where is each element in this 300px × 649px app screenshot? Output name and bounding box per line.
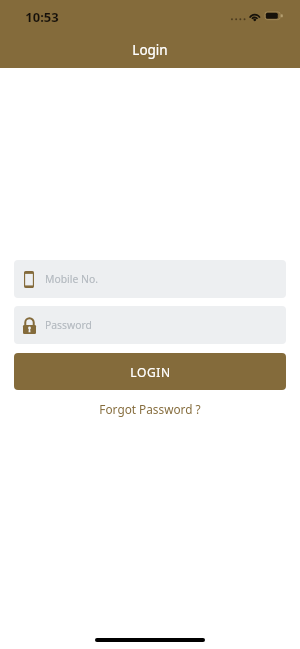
button[interactable]: Forgot Password ? [93,399,207,419]
staticText: Mobile No. [45,272,98,286]
staticText: Password [45,318,92,332]
button[interactable]: Password [14,306,286,344]
staticText: LOGIN [130,364,171,380]
button[interactable]: Mobile number [14,260,286,298]
other: Password [23,317,36,334]
staticText: Login [132,41,168,59]
button[interactable]: LOGIN [14,353,286,390]
staticText: Forgot Password ? [99,401,201,417]
staticText: 10:53 [25,8,59,26]
other: Mobile number [24,271,34,288]
